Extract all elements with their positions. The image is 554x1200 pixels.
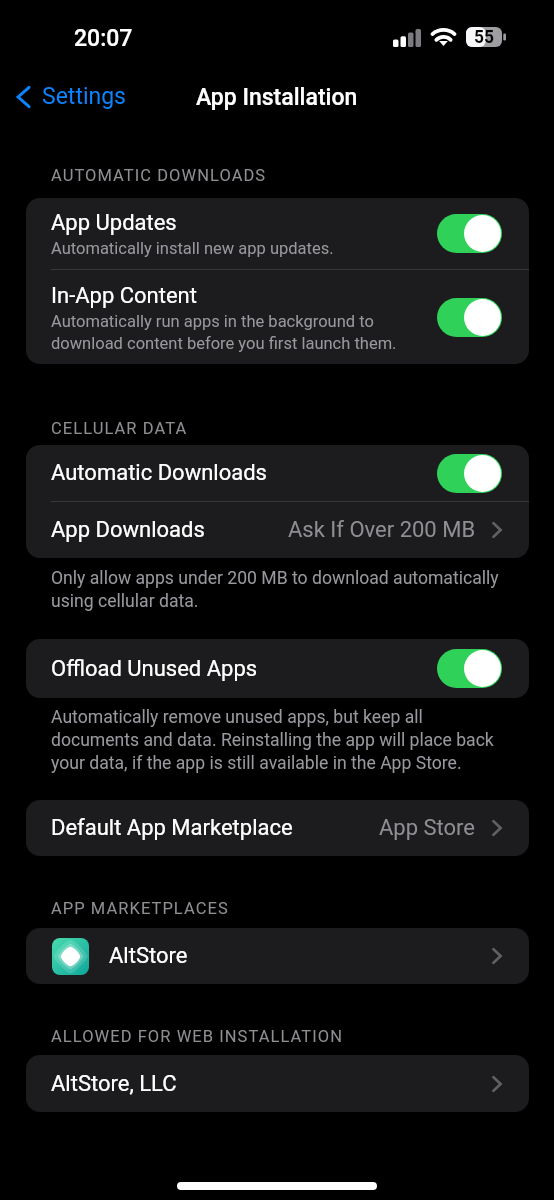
staticText: AUTOMATIC DOWNLOADS [51,166,267,185]
staticText: APP MARKETPLACES [51,899,229,918]
staticText: Automatic Downloads [51,460,267,486]
button[interactable]: Toggle setting [437,454,502,493]
staticText: CELLULAR DATA [51,419,188,438]
staticText: Settings [42,83,126,110]
staticText: Default App Marketplace [51,815,293,841]
staticText: Only allow apps under 200 MB to download… [51,568,499,612]
staticText: AltStore, LLC [51,1071,177,1097]
button[interactable]: AltStore, LLC [26,1055,529,1112]
button[interactable]: Offload Unused Apps [26,639,529,698]
staticText: Offload Unused Apps [51,656,258,682]
staticText: ALLOWED FOR WEB INSTALLATION [51,1027,343,1046]
button[interactable]: Toggle setting [437,298,502,337]
staticText: Ask If Over 200 MB [288,517,476,543]
staticText: Automatically run apps in the background… [51,312,397,353]
button[interactable]: Back to Settings [8,80,134,113]
staticText: App Downloads [51,517,205,543]
staticText: App Installation [196,84,358,111]
button[interactable]: Default App Marketplace [26,800,529,856]
button[interactable]: App Downloads [26,502,529,558]
staticText: 20:07 [74,25,133,52]
staticText: In-App Content [51,283,197,309]
button[interactable]: In-App Content [26,270,529,364]
staticText: App Updates [51,210,177,236]
button[interactable]: AltStore [26,928,529,984]
button[interactable]: Toggle setting [437,649,502,688]
staticText: App Store [379,815,476,841]
button[interactable]: Toggle setting [437,214,502,253]
button[interactable]: App Updates [26,198,529,269]
button[interactable]: Automatic Downloads [26,445,529,501]
staticText: AltStore [109,943,188,969]
staticText: 55 [474,27,495,47]
staticText: Automatically install new app updates. [51,239,334,258]
staticText: Automatically remove unused apps, but ke… [51,707,494,774]
